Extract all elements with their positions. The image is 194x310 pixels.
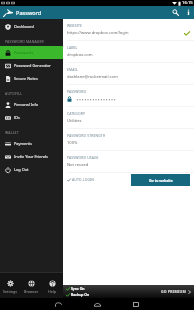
staticText: PASSWORD STRENGTH [67, 133, 106, 138]
staticText: Browser [24, 289, 39, 294]
staticText: Secure Notes [14, 76, 38, 81]
button[interactable]: Invite Your Friends [0, 150, 63, 163]
button[interactable]: WEBSITE [63, 19, 194, 41]
button[interactable]: LABEL [63, 41, 194, 63]
staticText: Passwords [14, 50, 34, 55]
button[interactable]: Secure Notes [0, 72, 63, 85]
button[interactable]: Home [91, 298, 103, 310]
staticText: CATEGORY [67, 111, 86, 116]
staticText: Backup On [71, 292, 90, 297]
button[interactable]: Open navigation drawer [0, 6, 16, 19]
staticText: Dashboard [14, 24, 34, 29]
button[interactable]: PASSWORD STRENGTH [63, 129, 194, 151]
button[interactable]: AUTO-LOGIN [67, 175, 95, 184]
staticText: 100% [67, 140, 78, 146]
staticText: LABEL [67, 45, 78, 50]
staticText: Go to website [149, 178, 173, 183]
button[interactable]: Settings [0, 273, 21, 298]
staticText: PASSWORD USAGE [67, 155, 99, 160]
button[interactable]: IDs [0, 111, 63, 124]
staticText: Payments [14, 141, 32, 146]
staticText: Settings [3, 289, 18, 294]
button[interactable]: Help [42, 273, 63, 298]
button[interactable]: PASSWORD [63, 85, 194, 107]
button[interactable]: Back [52, 298, 64, 310]
button[interactable]: Go to website [131, 174, 190, 186]
staticText: Log Out [14, 167, 29, 172]
staticText: Password [16, 9, 42, 17]
button[interactable]: Payments [0, 137, 63, 150]
button[interactable]: Passwords [0, 46, 63, 59]
button[interactable]: Search [168, 6, 182, 19]
staticText: GO PREMIUM [161, 289, 186, 294]
button[interactable]: Log Out [0, 163, 63, 176]
staticText: Not reused [67, 162, 89, 168]
staticText: 16:15 [182, 0, 193, 6]
staticText: EMAIL [67, 67, 78, 72]
staticText: Sync On [71, 286, 85, 291]
button[interactable]: Browser [21, 273, 42, 298]
staticText: WALLET [5, 130, 19, 135]
staticText: IDs [14, 115, 20, 120]
staticText: Help [48, 289, 57, 294]
button[interactable]: Recent apps [130, 298, 142, 310]
staticText: dashlane@rocketmail.com [67, 74, 118, 80]
button[interactable]: More options [182, 6, 194, 19]
staticText: PASSWORD [67, 89, 87, 94]
button[interactable]: Password Generator [0, 59, 63, 72]
button[interactable]: Dashboard [0, 20, 63, 33]
staticText: Invite Your Friends [14, 154, 48, 159]
staticText: Utilities [67, 118, 82, 124]
staticText: AUTO-LOGIN [72, 177, 95, 182]
button[interactable]: EMAIL [63, 63, 194, 85]
button[interactable]: CATEGORY [63, 107, 194, 129]
staticText: AUTOFILL [5, 91, 23, 96]
staticText: WEBSITE [67, 23, 82, 28]
button[interactable]: Personal Info [0, 98, 63, 111]
staticText: https://www.dropbox.com/login [67, 30, 129, 36]
staticText: Personal Info [14, 102, 39, 107]
staticText: PASSWORD MANAGER [5, 39, 44, 44]
button[interactable]: GO PREMIUM [161, 285, 191, 298]
staticText: dropbox.com [67, 52, 93, 58]
staticText: Password Generator [14, 63, 51, 68]
button[interactable]: PASSWORD USAGE [63, 151, 194, 173]
